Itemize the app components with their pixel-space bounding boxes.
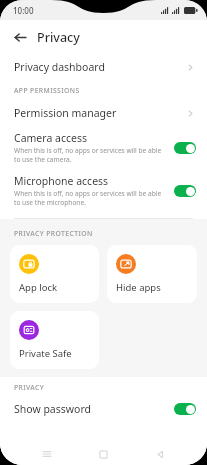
button[interactable]: Back: [9, 26, 31, 48]
staticText: Privacy dashboard: [14, 60, 186, 74]
staticText: When this is off, no apps or services wi…: [14, 189, 166, 207]
button[interactable]: Permission manager: [0, 100, 207, 126]
staticText: Private Safe: [19, 347, 72, 360]
staticText: Permission manager: [14, 106, 186, 120]
button[interactable]: Home: [75, 443, 132, 465]
button[interactable]: Toggle: [174, 142, 196, 154]
staticText: Camera access: [14, 131, 87, 145]
staticText: App lock: [19, 281, 58, 294]
button[interactable]: Toggle: [174, 403, 196, 415]
button[interactable]: Microphone access: [0, 169, 207, 212]
button[interactable]: Back: [132, 443, 189, 465]
button[interactable]: Hide apps: [107, 245, 197, 303]
staticText: Microphone access: [14, 174, 109, 188]
button[interactable]: Privacy dashboard: [0, 54, 207, 80]
staticText: PRIVACY PROTECTION: [14, 229, 93, 238]
staticText: Privacy: [37, 29, 80, 46]
staticText: APP PERMISSIONS: [14, 86, 80, 95]
staticText: 10:00: [13, 5, 34, 16]
staticText: PRIVACY: [14, 383, 45, 392]
staticText: When this is off, no apps or services wi…: [14, 146, 166, 164]
button[interactable]: Recents: [18, 443, 75, 465]
button[interactable]: Toggle: [174, 185, 196, 197]
button[interactable]: Show password: [0, 397, 207, 421]
button[interactable]: Camera access: [0, 126, 207, 169]
staticText: Hide apps: [116, 281, 161, 294]
staticText: Show password: [14, 402, 174, 416]
button[interactable]: Private Safe: [10, 311, 99, 369]
button[interactable]: App lock: [10, 245, 99, 303]
